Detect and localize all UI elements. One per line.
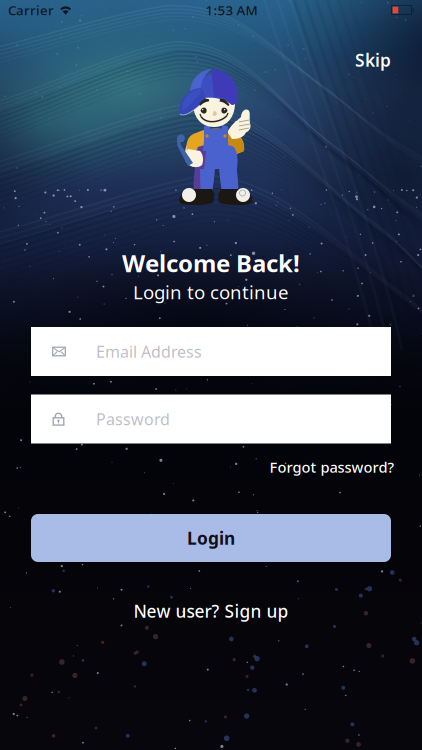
button[interactable]: New user? Sign up [115,590,306,631]
staticText: New user? Sign up [133,599,288,622]
staticText: Password [96,408,170,430]
staticText: Login to continue [133,280,289,304]
button[interactable]: Skip [339,39,407,80]
staticText: Carrier [8,1,54,19]
button[interactable]: Login [31,514,391,562]
staticText: Welcome Back! [122,247,300,279]
button[interactable]: Forgot password? [263,451,400,483]
staticText: Email Address [96,341,202,362]
staticText: Skip [355,48,391,71]
staticText: Forgot password? [269,457,394,477]
staticText: Login [187,526,235,549]
staticText: 1:53 AM [205,1,257,19]
button[interactable]: Email Address [31,327,391,376]
button[interactable]: Password [31,394,391,443]
